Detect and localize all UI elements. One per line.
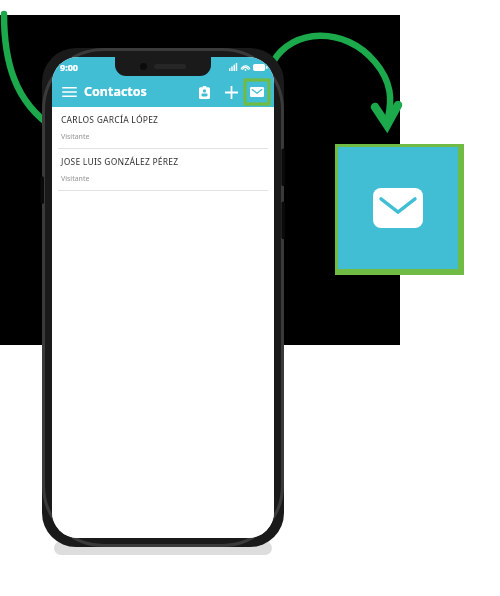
staticText: Visitante [61,132,90,142]
button[interactable]: Mail [245,80,269,104]
button[interactable]: Contact card [192,80,216,104]
staticText: JOSE LUIS GONZÁLEZ PÉREZ [61,156,179,168]
staticText: CARLOS GARCÍA LÓPEZ [61,114,159,126]
button[interactable]: JOSE LUIS GONZÁLEZ PÉREZ [52,149,274,191]
button[interactable]: CARLOS GARCÍA LÓPEZ [52,107,274,149]
button[interactable]: Menu [58,81,80,103]
staticText: Visitante [61,174,90,184]
staticText: 9:00 [60,61,78,73]
button[interactable]: Mail app icon [335,144,464,275]
staticText: Contactos [84,83,147,100]
button[interactable]: Add contact [219,80,243,104]
